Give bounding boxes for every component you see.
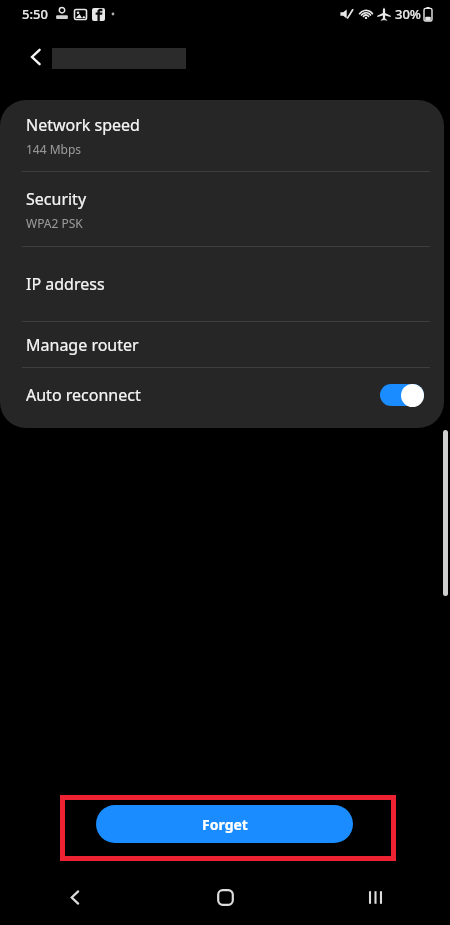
button[interactable]: Navigate up xyxy=(18,39,54,75)
button[interactable]: Security xyxy=(0,172,444,246)
button[interactable]: Home xyxy=(150,870,300,925)
staticText: Security xyxy=(26,188,87,210)
staticText: 144 Mbps xyxy=(26,141,82,157)
button[interactable]: Back xyxy=(0,870,150,925)
button[interactable]: Manage router xyxy=(0,322,444,367)
button[interactable]: Auto reconnect xyxy=(0,368,444,422)
button[interactable]: IP address xyxy=(0,247,444,321)
button[interactable]: Recent apps xyxy=(300,870,450,925)
staticText: Network speed xyxy=(26,114,140,136)
staticText: Auto reconnect xyxy=(26,384,141,406)
staticText: 30% xyxy=(395,5,421,23)
staticText: 5:50 xyxy=(22,5,48,23)
button[interactable]: Auto reconnect toggle xyxy=(380,383,424,407)
button[interactable]: Network speed xyxy=(0,100,444,171)
staticText: IP address xyxy=(26,273,105,295)
staticText: WPA2 PSK xyxy=(26,215,83,231)
staticText: Forget xyxy=(202,815,248,834)
button[interactable]: Forget xyxy=(96,805,353,843)
staticText: Manage router xyxy=(26,334,139,356)
